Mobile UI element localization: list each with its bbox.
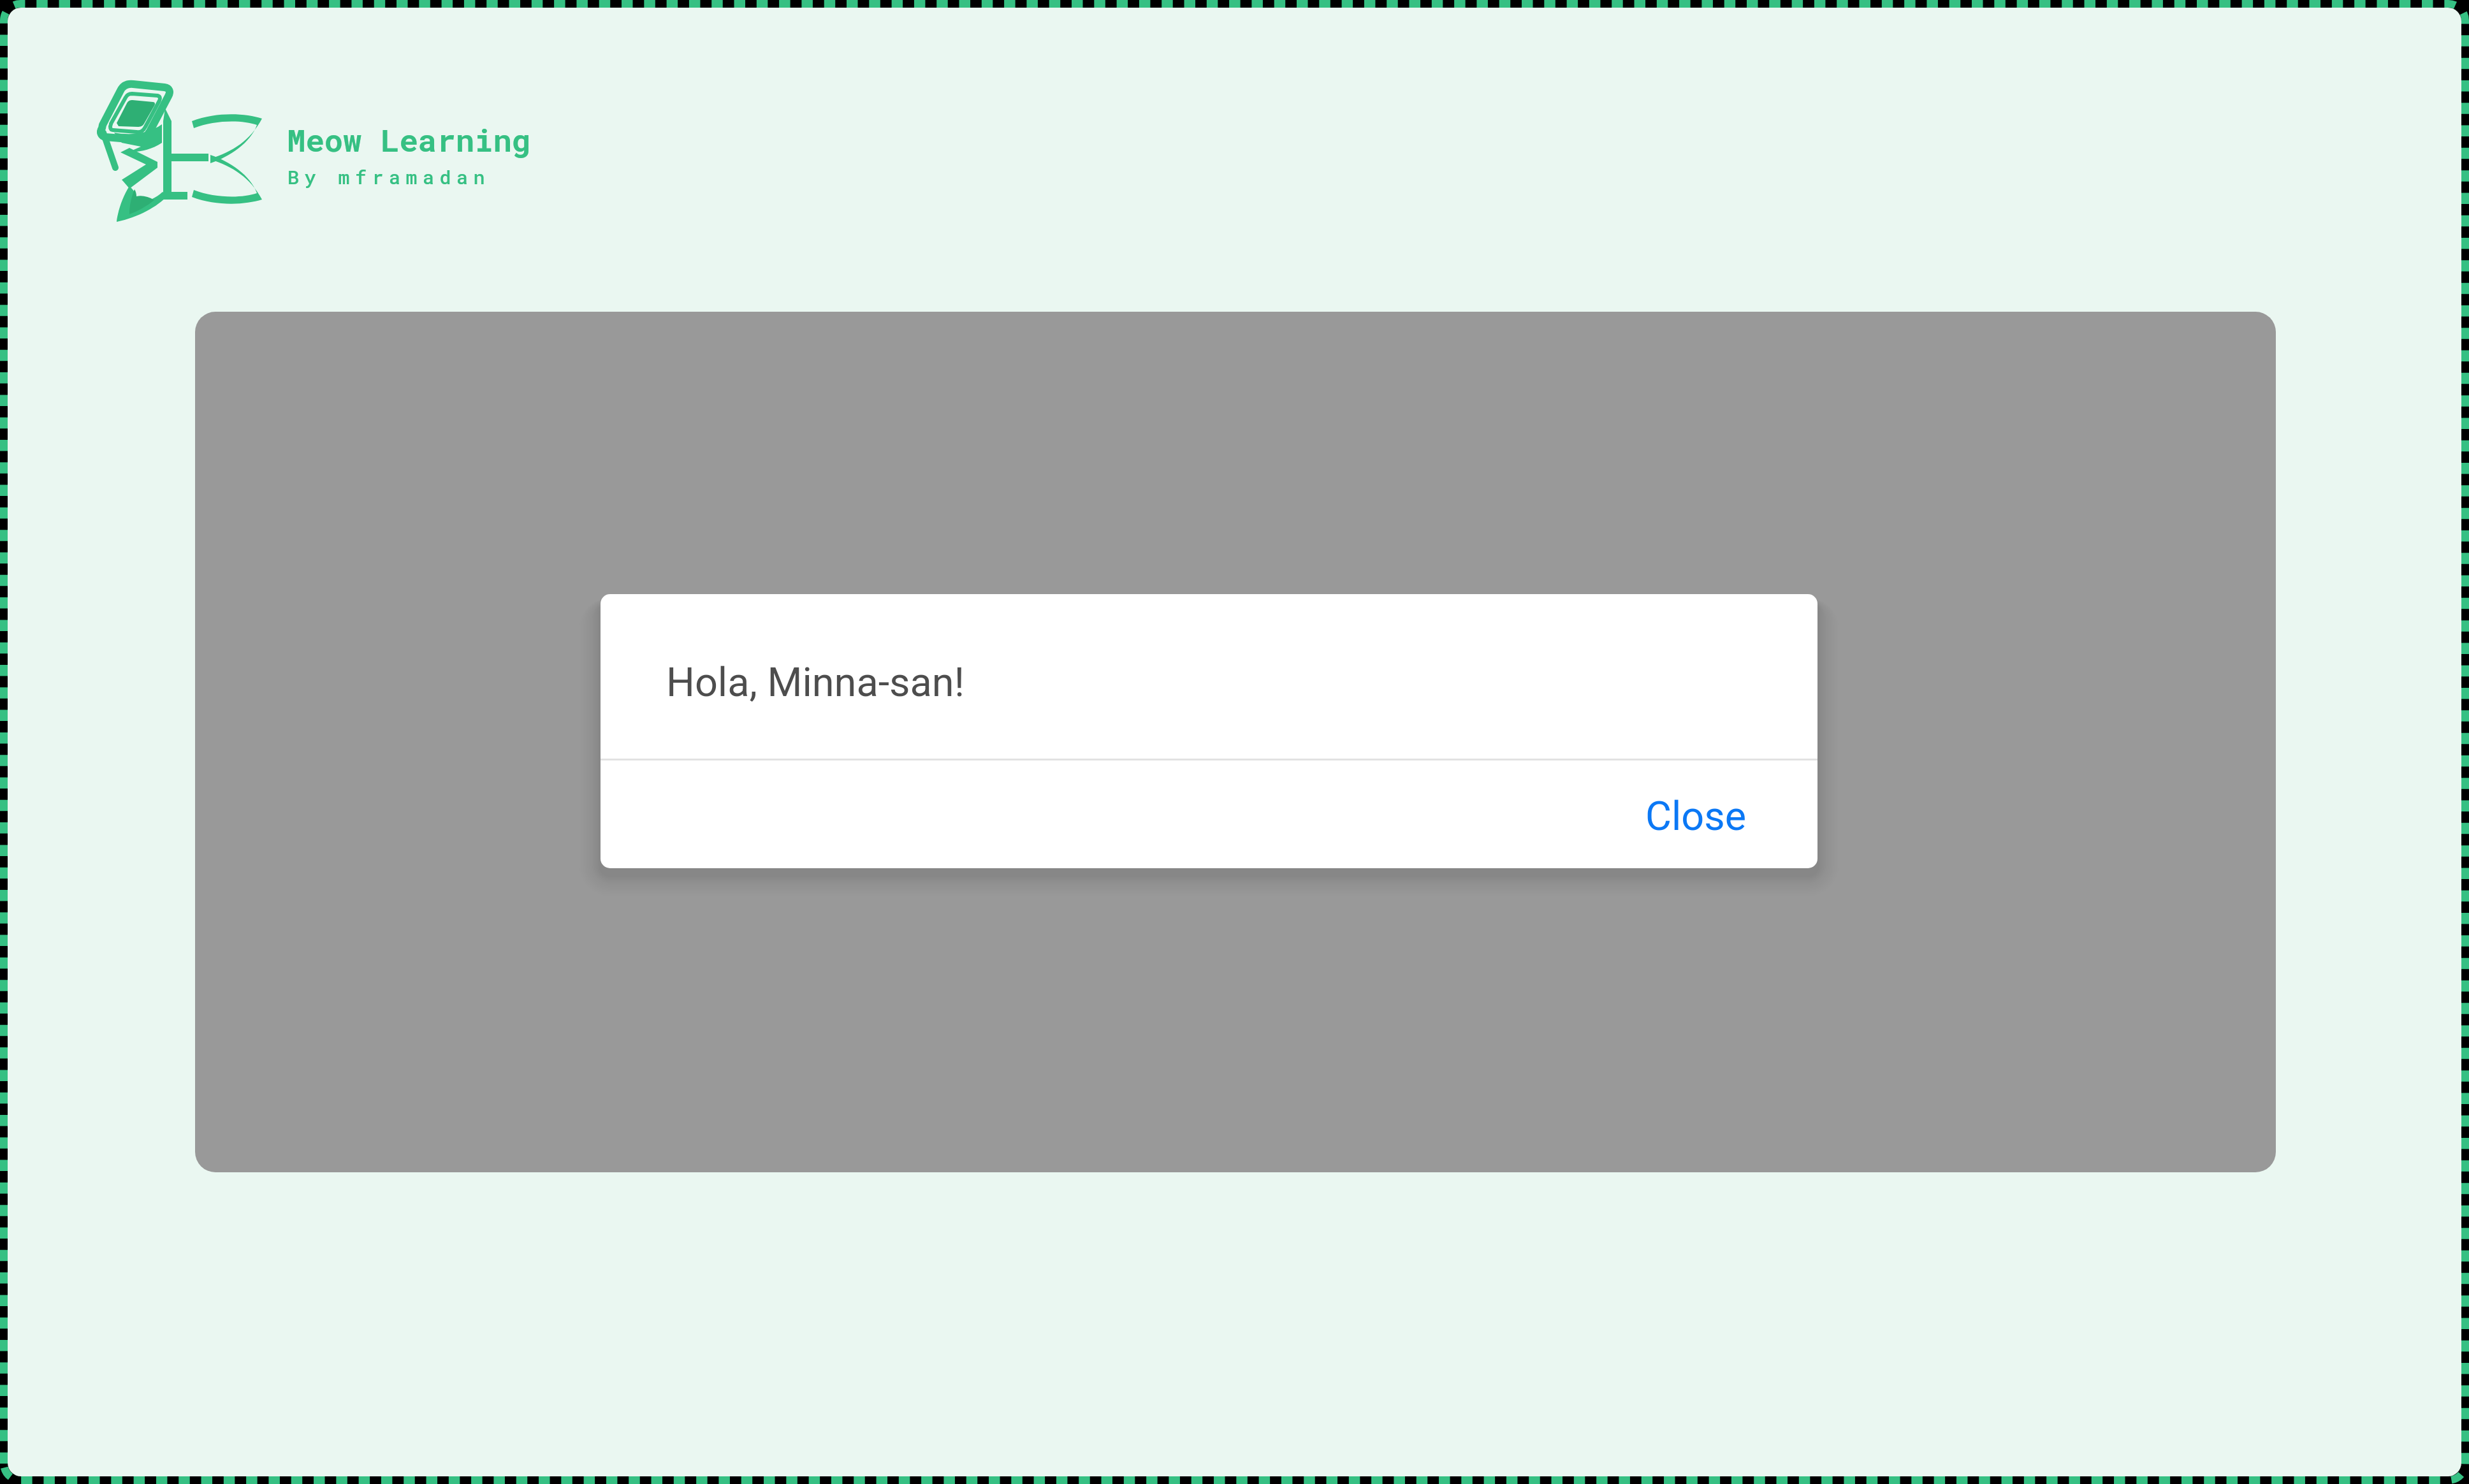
staticText: Close	[1645, 793, 1747, 840]
staticText: Meow Learning	[287, 119, 531, 161]
staticText: By mframadan	[288, 164, 491, 190]
button[interactable]: Close	[1575, 775, 1817, 858]
other: Meow Learning logo	[99, 84, 263, 222]
staticText: Hola, Minna-san!	[666, 659, 965, 706]
